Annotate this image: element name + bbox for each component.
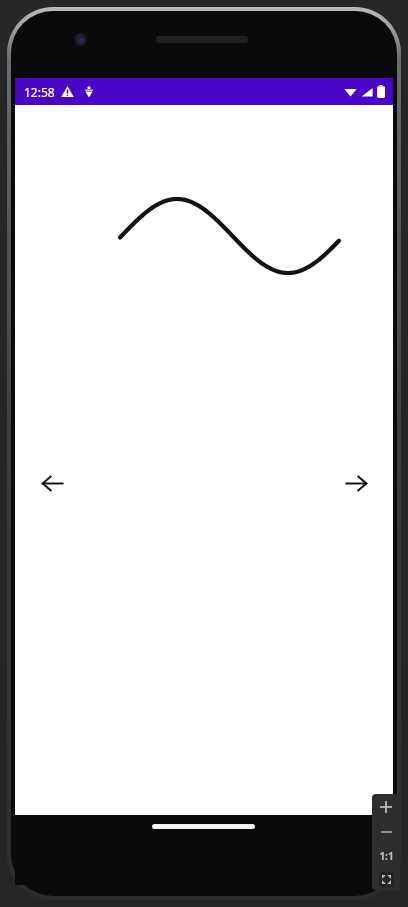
staticText: 12:58 xyxy=(24,84,55,100)
button[interactable]: Fit to screen xyxy=(372,868,400,890)
button[interactable]: Zoom out xyxy=(372,820,400,844)
button[interactable]: Next xyxy=(330,457,382,509)
button[interactable]: Previous xyxy=(26,457,78,509)
button[interactable]: Actual size xyxy=(372,844,400,868)
button[interactable]: Zoom in xyxy=(372,794,400,820)
staticText: 1:1 xyxy=(379,849,394,863)
